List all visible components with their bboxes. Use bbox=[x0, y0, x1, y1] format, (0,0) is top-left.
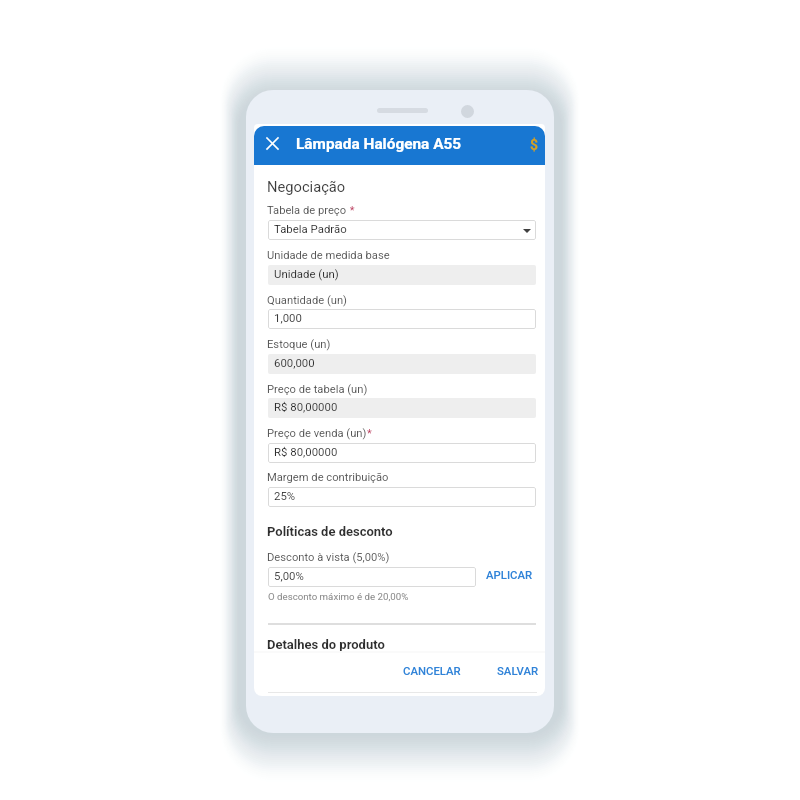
staticText: Preço de venda (un) bbox=[267, 427, 367, 440]
button[interactable]: Preço bbox=[523, 126, 545, 164]
staticText: Desconto à vista (5,00%) bbox=[267, 551, 390, 564]
button[interactable]: R$ 80,00000 bbox=[268, 398, 536, 418]
staticText: * bbox=[367, 427, 372, 440]
button[interactable]: SALVAR bbox=[491, 660, 545, 681]
staticText: 25% bbox=[274, 489, 296, 502]
staticText: Margem de contribuição bbox=[267, 471, 389, 484]
staticText: Detalhes do produto bbox=[267, 637, 385, 652]
button[interactable]: 600,000 bbox=[268, 354, 536, 374]
staticText: O desconto máximo é de 20,00% bbox=[268, 591, 409, 602]
staticText: Negociação bbox=[267, 178, 346, 195]
button[interactable]: Fechar bbox=[254, 126, 290, 163]
staticText: Preço de tabela (un) bbox=[267, 383, 368, 396]
staticText: Lâmpada Halógena A55 bbox=[296, 135, 462, 153]
button[interactable]: R$ 80,00000 bbox=[268, 443, 536, 463]
staticText: 5,00% bbox=[274, 569, 304, 582]
staticText: Quantidade (un) bbox=[267, 294, 347, 307]
staticText: * bbox=[347, 204, 355, 217]
button[interactable]: 1,000 bbox=[268, 309, 536, 329]
button[interactable]: 5,00% bbox=[268, 567, 476, 587]
staticText: APLICAR bbox=[486, 568, 533, 581]
staticText: Políticas de desconto bbox=[267, 524, 393, 539]
button[interactable]: Unidade (un) bbox=[268, 265, 536, 285]
button[interactable]: APLICAR bbox=[480, 564, 539, 585]
staticText: R$ 80,00000 bbox=[274, 445, 338, 458]
staticText: Estoque (un) bbox=[267, 338, 331, 351]
staticText: Tabela de preço bbox=[267, 204, 347, 217]
staticText: Tabela Padrão bbox=[274, 222, 347, 235]
staticText: 1,000 bbox=[274, 311, 302, 324]
staticText: 600,000 bbox=[274, 356, 315, 369]
staticText: CANCELAR bbox=[403, 664, 461, 677]
staticText: Unidade (un) bbox=[274, 267, 339, 280]
staticText: Unidade de medida base bbox=[267, 249, 390, 262]
button[interactable]: 25% bbox=[268, 487, 536, 507]
button[interactable]: Tabela Padrão bbox=[268, 220, 536, 240]
staticText: R$ 80,00000 bbox=[274, 400, 338, 413]
staticText: $ bbox=[530, 137, 539, 153]
button[interactable]: CANCELAR bbox=[397, 660, 467, 681]
staticText: SALVAR bbox=[497, 664, 539, 677]
